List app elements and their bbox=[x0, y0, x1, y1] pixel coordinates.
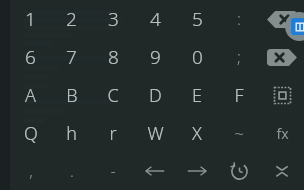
button[interactable]: A bbox=[10, 76, 51, 114]
button[interactable]: X bbox=[176, 114, 218, 152]
button[interactable]: F bbox=[218, 76, 260, 114]
button[interactable]: B bbox=[51, 76, 92, 114]
button[interactable]: , bbox=[10, 152, 51, 190]
button[interactable]: r bbox=[92, 114, 134, 152]
staticText: X bbox=[192, 121, 202, 146]
staticText: ~ bbox=[234, 122, 244, 145]
button[interactable]: History bbox=[218, 152, 260, 190]
button[interactable]: h bbox=[51, 114, 92, 152]
staticText: : bbox=[237, 8, 241, 30]
button[interactable]: 8 bbox=[92, 38, 134, 76]
button[interactable]: 3 bbox=[92, 0, 134, 38]
button[interactable]: 0 bbox=[176, 38, 218, 76]
button[interactable]: 7 bbox=[51, 38, 92, 76]
button[interactable]: W bbox=[134, 114, 176, 152]
button[interactable]: Select all bbox=[260, 76, 304, 114]
staticText: A bbox=[25, 83, 36, 108]
button[interactable]: 5 bbox=[176, 0, 218, 38]
staticText: E bbox=[192, 83, 202, 108]
staticText: h bbox=[66, 121, 77, 146]
staticText: 1 bbox=[25, 6, 36, 32]
staticText: ; bbox=[237, 46, 241, 68]
button[interactable]: : bbox=[218, 0, 260, 38]
staticText: 9 bbox=[150, 44, 161, 70]
staticText: 3 bbox=[108, 6, 119, 32]
button[interactable]: D bbox=[134, 76, 176, 114]
staticText: B bbox=[66, 83, 78, 108]
button[interactable]: Backspace bbox=[260, 0, 304, 38]
staticText: 0 bbox=[192, 44, 203, 70]
button[interactable]: ~ bbox=[218, 114, 260, 152]
staticText: C bbox=[107, 83, 119, 108]
button[interactable]: Move right bbox=[176, 152, 218, 190]
staticText: 2 bbox=[66, 6, 77, 32]
button[interactable]: Hide keyboard bbox=[260, 152, 304, 190]
staticText: , bbox=[29, 160, 33, 182]
button[interactable]: C bbox=[92, 76, 134, 114]
staticText: Q bbox=[24, 121, 38, 146]
staticText: F bbox=[234, 83, 244, 108]
staticText: 7 bbox=[66, 44, 77, 70]
staticText: fx bbox=[276, 124, 289, 143]
staticText: 6 bbox=[25, 44, 36, 70]
button[interactable]: 9 bbox=[134, 38, 176, 76]
button[interactable]: 4 bbox=[134, 0, 176, 38]
staticText: 4 bbox=[150, 6, 161, 32]
button[interactable]: Move left bbox=[134, 152, 176, 190]
staticText: 5 bbox=[192, 6, 203, 32]
staticText: 8 bbox=[108, 44, 119, 70]
staticText: - bbox=[110, 160, 116, 182]
staticText: D bbox=[149, 83, 162, 108]
button[interactable]: E bbox=[176, 76, 218, 114]
staticText: . bbox=[70, 160, 74, 182]
button[interactable]: 6 bbox=[10, 38, 51, 76]
button[interactable]: Q bbox=[10, 114, 51, 152]
staticText: r bbox=[109, 121, 117, 146]
button[interactable]: 1 bbox=[10, 0, 51, 38]
button[interactable]: fx bbox=[260, 114, 304, 152]
button[interactable]: - bbox=[92, 152, 134, 190]
button[interactable]: Delete forward bbox=[260, 38, 304, 76]
staticText: W bbox=[147, 121, 164, 146]
button[interactable]: ; bbox=[218, 38, 260, 76]
button[interactable]: 2 bbox=[51, 0, 92, 38]
button[interactable]: App shortcut bbox=[285, 12, 304, 41]
